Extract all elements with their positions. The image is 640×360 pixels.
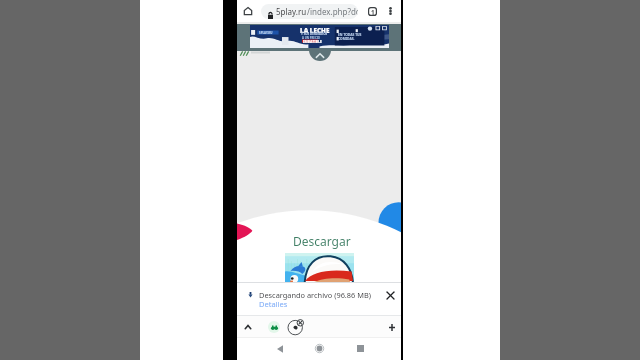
button[interactable]: Close bbox=[381, 286, 399, 304]
button[interactable]: Extensions bbox=[268, 321, 280, 333]
button[interactable]: Expand toolbar bbox=[239, 318, 257, 336]
button[interactable]: Home bbox=[309, 338, 330, 359]
staticText: 1 bbox=[371, 8, 375, 16]
button[interactable]: Tabs bbox=[362, 0, 382, 22]
staticText: Descargando archivo (96.86 MB) bbox=[259, 290, 371, 300]
staticText: COMIDAS. bbox=[338, 36, 355, 40]
staticText: A UN PRECIO bbox=[302, 36, 321, 40]
button[interactable]: Recent apps bbox=[350, 338, 371, 359]
button[interactable]: Collapse ad bbox=[309, 50, 331, 61]
staticText: LA LECHE bbox=[300, 26, 330, 35]
button[interactable]: Home bbox=[237, 0, 259, 22]
button[interactable]: Download bbox=[245, 290, 255, 300]
button[interactable]: LA LECHE bbox=[250, 25, 389, 48]
button[interactable]: New tab bbox=[382, 318, 401, 337]
button[interactable]: Back bbox=[269, 338, 290, 359]
button[interactable]: More options bbox=[380, 0, 400, 22]
button[interactable]: Downloads bbox=[286, 317, 306, 337]
staticText: 5PLAY.RU bbox=[259, 31, 273, 35]
button[interactable]: Preview image bbox=[285, 253, 354, 282]
staticText: IMBATIBLE bbox=[303, 39, 322, 44]
button[interactable]: 5play.ru bbox=[261, 4, 358, 19]
staticText: EN TODAS TUS bbox=[338, 32, 362, 36]
button[interactable]: Detalles bbox=[259, 299, 288, 309]
staticText: Y SUS DERIVADOS bbox=[301, 32, 328, 36]
staticText: /index.php?do bbox=[307, 6, 358, 17]
staticText: Descargar bbox=[293, 233, 351, 249]
staticText: 5play.ru bbox=[276, 6, 307, 17]
